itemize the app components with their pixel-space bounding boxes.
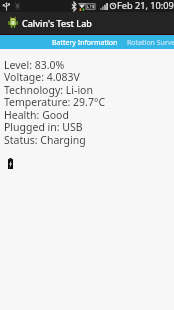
staticText: Battery Information <box>52 38 118 48</box>
staticText: Calvin's Test Lab <box>22 17 92 29</box>
staticText: Temperature: 29.7°C <box>4 95 106 109</box>
staticText: Technology: Li-ion <box>4 83 93 97</box>
staticText: Voltage: 4.083V <box>4 70 80 84</box>
staticText: Health: Good <box>4 108 69 122</box>
staticText: Status: Charging <box>4 133 86 147</box>
staticText: Rotation Survey <box>127 38 174 48</box>
staticText: Feb 21, 10:09 <box>117 0 174 11</box>
staticText: Level: 83.0% <box>4 58 65 72</box>
button[interactable]: Battery Information <box>37 35 133 49</box>
staticText: Plugged in: USB <box>4 120 83 134</box>
button[interactable]: Rotation Survey <box>121 35 174 49</box>
